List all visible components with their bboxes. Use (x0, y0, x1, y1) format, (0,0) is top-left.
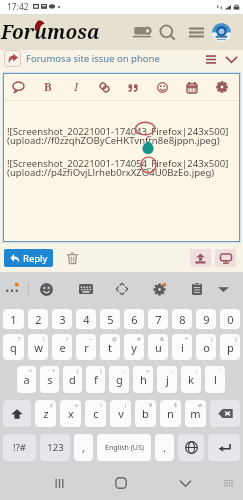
button[interactable]: !?# (3, 434, 36, 461)
staticText: 123 (47, 441, 64, 454)
staticText: ) (100, 367, 102, 374)
button[interactable]: down (214, 280, 232, 298)
button[interactable]: emoji (37, 280, 55, 298)
button[interactable]: 3 (52, 309, 72, 329)
button[interactable]: Preview (215, 249, 236, 267)
button[interactable]: I (66, 77, 86, 97)
staticText: $ (174, 401, 178, 408)
button[interactable]: link (94, 77, 114, 97)
button[interactable]: 5 (100, 309, 120, 329)
staticText: e (59, 340, 66, 355)
button[interactable]: Topic list (203, 51, 219, 67)
button[interactable]: globe (178, 434, 204, 461)
button[interactable]: k (181, 366, 201, 393)
staticText: 1 (10, 312, 17, 327)
button[interactable]: p (220, 334, 240, 360)
button[interactable]: 1 (3, 309, 24, 329)
button[interactable]: Reply (4, 249, 53, 267)
button[interactable]: move (113, 280, 131, 298)
button[interactable]: clip (188, 280, 206, 298)
button[interactable]: h (133, 366, 153, 393)
staticText: ( (77, 367, 79, 374)
staticText: n (167, 406, 174, 421)
button[interactable]: c (85, 400, 106, 427)
button[interactable]: v (110, 400, 131, 427)
staticText: ) (235, 335, 237, 342)
button[interactable]: , (74, 434, 93, 461)
button[interactable]: b (135, 400, 156, 427)
button[interactable]: 4 (76, 309, 96, 329)
button[interactable]: Delete draft (63, 249, 81, 267)
button[interactable]: u (148, 334, 168, 360)
staticText: 8 (179, 312, 186, 327)
button[interactable]: gear (150, 280, 168, 298)
button[interactable]: quote (123, 77, 143, 97)
button[interactable]: keyboard (77, 280, 95, 298)
button[interactable]: i (172, 334, 192, 360)
button[interactable]: . (155, 434, 174, 461)
button[interactable]: x (60, 400, 81, 427)
button[interactable]: Hide keyboard (219, 474, 237, 492)
staticText: * (185, 335, 189, 342)
button[interactable]: 2 (28, 309, 48, 329)
button[interactable]: Profile (209, 20, 233, 44)
staticText: + (52, 367, 56, 374)
button[interactable]: l (205, 366, 225, 393)
button[interactable]: t (100, 334, 120, 360)
button[interactable]: y (124, 334, 144, 360)
button[interactable]: emoji (152, 77, 172, 97)
button[interactable]: Search (155, 20, 179, 44)
button[interactable]: Upload (190, 249, 211, 267)
button[interactable]: r (76, 334, 96, 360)
staticText: g (116, 372, 123, 387)
button[interactable]: 8 (172, 309, 192, 329)
button[interactable]: 6 (124, 309, 144, 329)
staticText: 2 (35, 312, 42, 327)
staticText: Reply (23, 252, 48, 265)
staticText: 0 (227, 312, 234, 327)
staticText: s (47, 372, 53, 387)
button[interactable]: English (US) (97, 434, 151, 461)
staticText: ¥ (149, 401, 153, 408)
staticText: . (163, 440, 166, 455)
staticText: 9 (203, 312, 210, 327)
button[interactable]: f (86, 366, 105, 393)
button[interactable]: e (52, 334, 72, 360)
button[interactable]: cal (182, 77, 202, 97)
button[interactable]: n (160, 400, 181, 427)
button[interactable]: chat (8, 77, 28, 97)
button[interactable]: g (109, 366, 129, 393)
button[interactable]: enter (208, 434, 240, 461)
button[interactable]: d (63, 366, 82, 393)
staticText: , (82, 440, 85, 455)
staticText: 5 (107, 312, 114, 327)
button[interactable]: Home (110, 472, 132, 494)
button[interactable]: More options (3, 280, 21, 298)
button[interactable]: j (157, 366, 177, 393)
button[interactable]: m (185, 400, 206, 427)
staticText: & (160, 335, 165, 342)
button[interactable]: shift (3, 400, 31, 427)
staticText: (upload://f0zzqhZOByCeHKTvnftn8e8jppn.jp… (7, 134, 220, 147)
button[interactable]: q (3, 334, 24, 360)
button[interactable]: Recents (48, 472, 70, 494)
button[interactable]: 123 (40, 434, 70, 461)
button[interactable]: Reply to topic (4, 50, 21, 67)
button[interactable]: 0 (220, 309, 240, 329)
button[interactable]: Back (174, 472, 196, 494)
button[interactable]: z (35, 400, 56, 427)
button[interactable]: w (28, 334, 48, 360)
button[interactable]: Menu (184, 20, 208, 44)
button[interactable]: 9 (196, 309, 216, 329)
button[interactable]: s (40, 366, 59, 393)
button[interactable]: Coffee (130, 20, 154, 44)
staticText: / (66, 335, 69, 342)
button[interactable]: 7 (148, 309, 168, 329)
button[interactable]: backspace (210, 400, 240, 427)
button[interactable]: gear (212, 77, 232, 97)
button[interactable]: Expand (223, 51, 239, 67)
button[interactable]: o (196, 334, 216, 360)
button[interactable]: a (17, 366, 36, 393)
staticText: - (124, 367, 126, 374)
button[interactable]: B (38, 77, 58, 97)
